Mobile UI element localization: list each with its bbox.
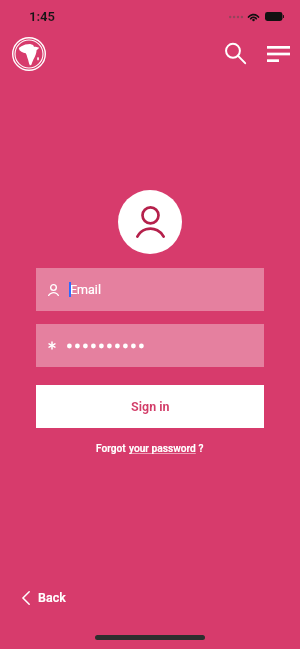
button[interactable]: Search (220, 38, 251, 69)
button[interactable] (36, 324, 264, 367)
staticText: your password (129, 443, 196, 455)
staticText: Sign in (131, 399, 170, 414)
button[interactable]: Forgot (0, 443, 300, 455)
staticText: Forgot (96, 443, 129, 455)
staticText: ? (196, 443, 204, 455)
button[interactable]: Email (36, 268, 264, 311)
button[interactable]: Menu (263, 38, 294, 69)
button[interactable]: Sign in (36, 385, 264, 428)
button[interactable]: Back (18, 586, 70, 609)
staticText: Back (38, 590, 66, 605)
button[interactable]: Logo (12, 37, 46, 71)
staticText: Email (70, 282, 101, 297)
staticText: 1:45 (29, 9, 56, 24)
